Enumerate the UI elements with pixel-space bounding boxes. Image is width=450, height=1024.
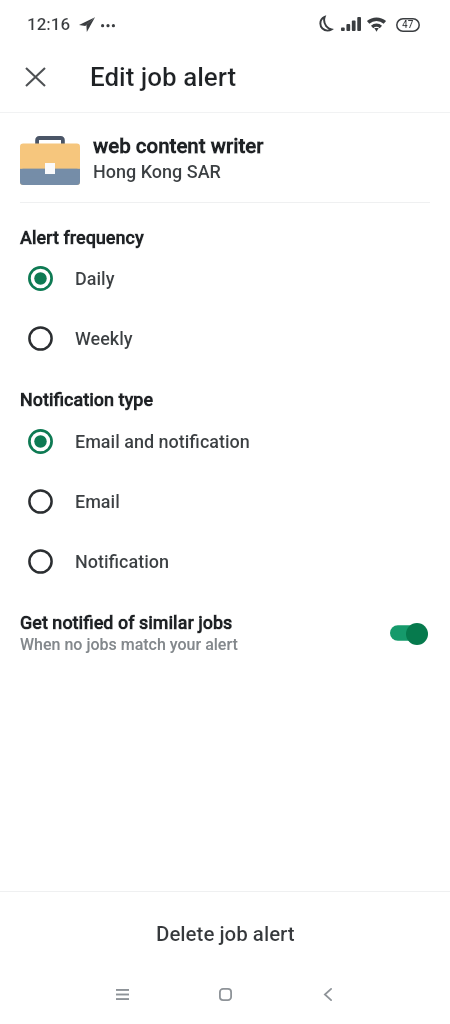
staticText: 12:16	[27, 14, 71, 34]
staticText: 47	[402, 19, 414, 31]
button[interactable]: Get notified of similar jobs	[0, 602, 450, 664]
button[interactable]: Notification	[0, 531, 450, 591]
staticText: web content writer	[93, 134, 264, 158]
staticText: Notification type	[20, 389, 154, 410]
staticText: Get notified of similar jobs	[20, 612, 233, 633]
staticText: Hong Kong SAR	[93, 161, 221, 182]
button[interactable]: Close	[11, 53, 59, 101]
button[interactable]: web content writer	[0, 113, 450, 202]
staticText: Alert frequency	[20, 227, 144, 248]
button[interactable]: Back	[297, 968, 358, 1020]
staticText: Delete job alert	[156, 922, 295, 946]
staticText: Weekly	[75, 328, 133, 349]
staticText: When no jobs match your alert	[20, 635, 238, 654]
staticText: Notification	[75, 551, 169, 572]
staticText: Email and notification	[75, 431, 250, 452]
button[interactable]: Daily	[0, 248, 450, 308]
staticText: Email	[75, 491, 120, 512]
button[interactable]: Email	[0, 471, 450, 531]
staticText: Daily	[75, 268, 115, 289]
button[interactable]: Recent apps	[92, 968, 153, 1020]
staticText: Edit job alert	[90, 62, 237, 92]
button[interactable]: Home	[195, 968, 256, 1020]
button[interactable]: Delete job alert	[0, 892, 450, 968]
button[interactable]: Weekly	[0, 308, 450, 368]
button[interactable]: Email and notification	[0, 411, 450, 471]
